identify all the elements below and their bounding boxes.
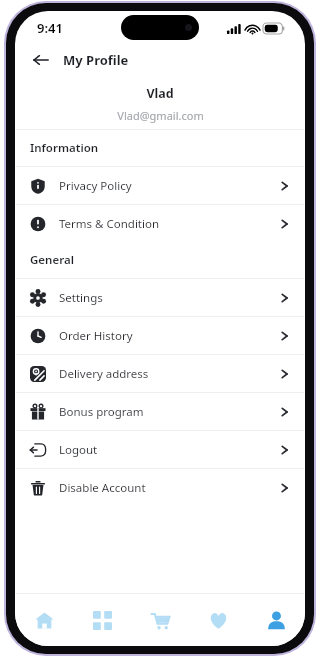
staticText: Bonus program bbox=[59, 404, 144, 420]
staticText: Privacy Policy bbox=[59, 178, 132, 194]
button[interactable]: Home bbox=[15, 594, 73, 646]
button[interactable]: Favorites bbox=[189, 594, 247, 646]
button[interactable]: Back bbox=[28, 47, 54, 73]
staticText: Vlad@gmail.com bbox=[117, 108, 204, 123]
button[interactable]: Order History bbox=[15, 317, 305, 354]
button[interactable]: Logout bbox=[15, 431, 305, 468]
staticText: Vlad bbox=[146, 85, 174, 102]
button[interactable]: Terms & Condition bbox=[15, 205, 305, 242]
button[interactable]: Categories bbox=[73, 594, 131, 646]
staticText: Disable Account bbox=[59, 480, 146, 496]
button[interactable]: Settings bbox=[15, 279, 305, 316]
staticText: Delivery address bbox=[59, 366, 149, 382]
staticText: General bbox=[30, 252, 74, 268]
button[interactable]: Bonus program bbox=[15, 393, 305, 430]
staticText: Logout bbox=[59, 442, 98, 458]
staticText: 9:41 bbox=[37, 19, 63, 37]
button[interactable]: Disable Account bbox=[15, 469, 305, 506]
staticText: Terms & Condition bbox=[59, 216, 160, 232]
button[interactable]: Privacy Policy bbox=[15, 167, 305, 204]
staticText: Settings bbox=[59, 290, 103, 306]
button[interactable]: Cart bbox=[131, 594, 189, 646]
staticText: Information bbox=[30, 140, 99, 156]
button[interactable]: Profile bbox=[247, 594, 305, 646]
staticText: My Profile bbox=[63, 51, 129, 69]
button[interactable]: Delivery address bbox=[15, 355, 305, 392]
staticText: Order History bbox=[59, 328, 133, 344]
